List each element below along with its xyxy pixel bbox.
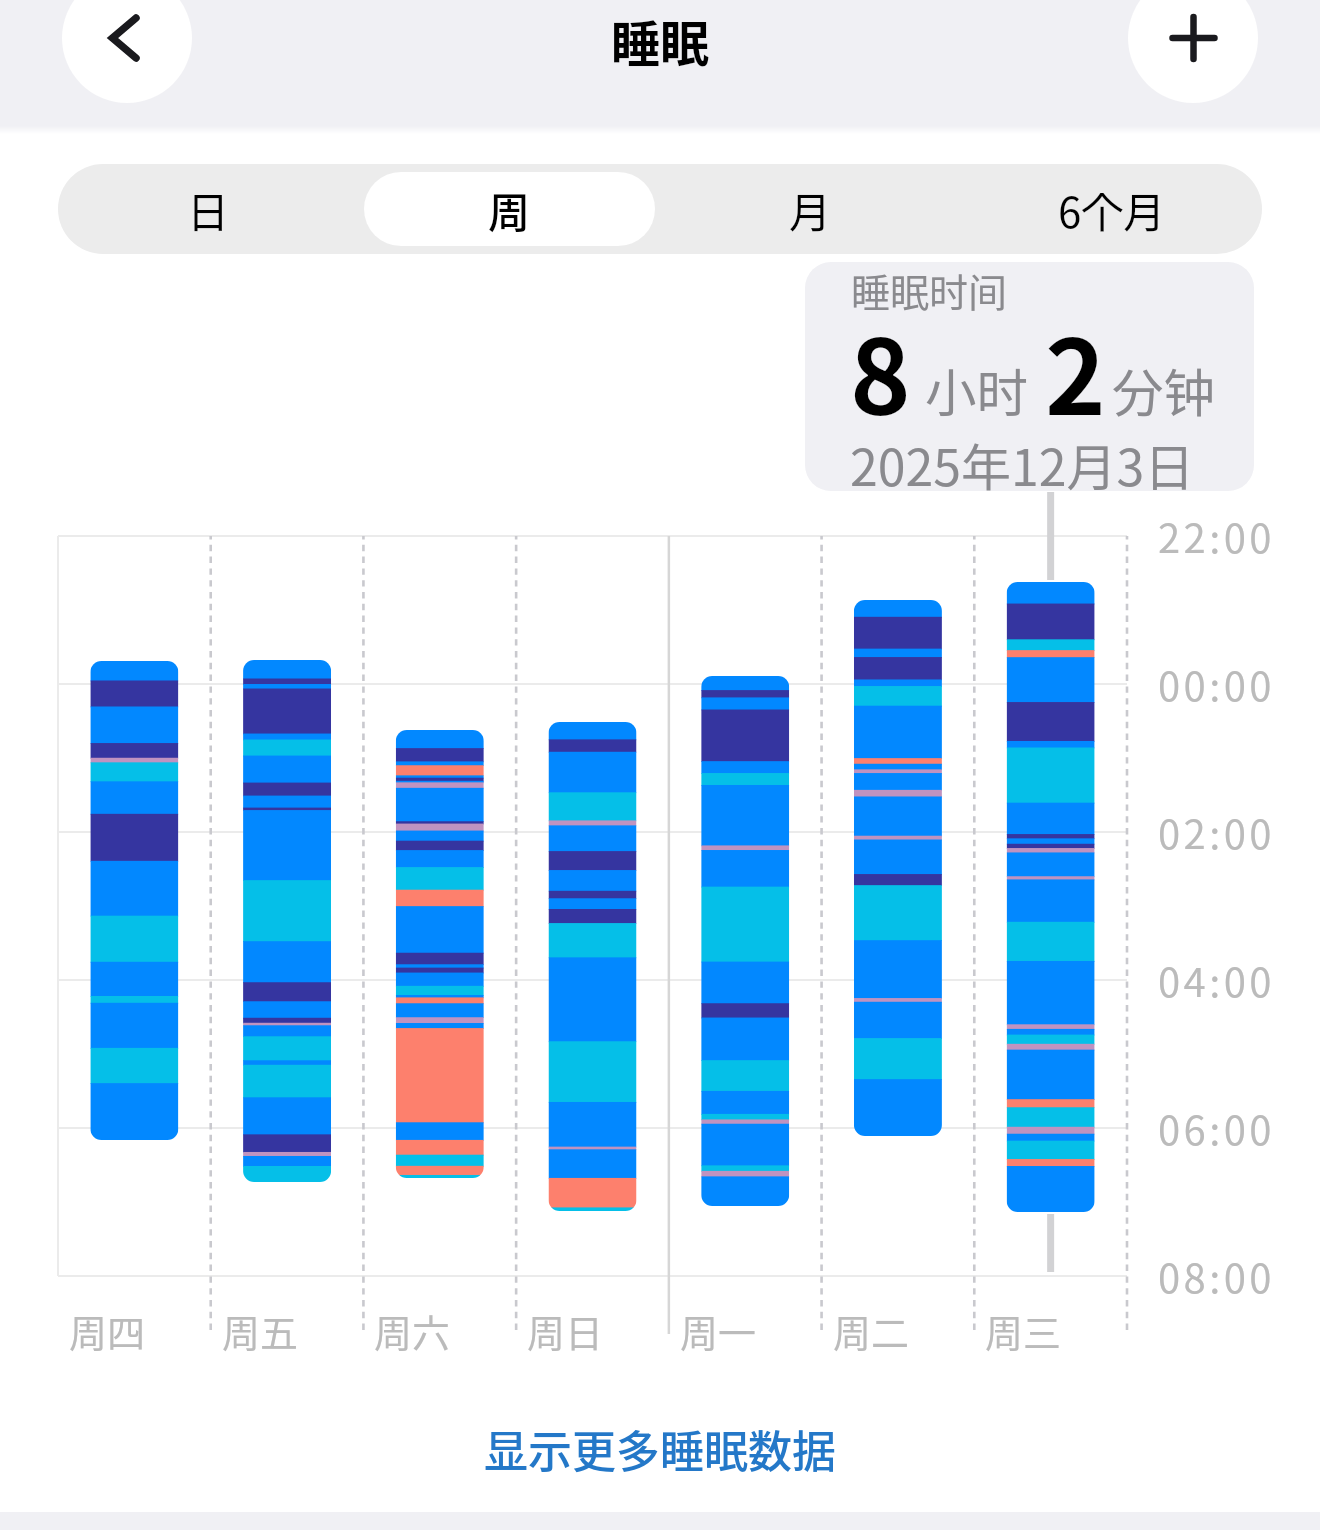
staticText: 2025年12月3日 — [850, 428, 1195, 491]
staticText: 显示更多睡眠数据 — [484, 1417, 836, 1481]
staticText: 2 — [1045, 296, 1106, 445]
button[interactable]: 6个月 — [961, 164, 1262, 254]
staticText: 08:00 — [1158, 1247, 1275, 1305]
staticText: 周三 — [985, 1303, 1062, 1358]
staticText: 周五 — [222, 1303, 299, 1358]
button[interactable]: 周五 — [211, 536, 364, 1360]
button[interactable]: 周三 — [974, 536, 1127, 1360]
button[interactable]: Add — [1128, 0, 1258, 103]
button[interactable]: 周日 — [516, 536, 669, 1360]
staticText: 00:00 — [1158, 655, 1275, 713]
staticText: 周日 — [527, 1303, 604, 1358]
button[interactable]: 周四 — [58, 536, 211, 1360]
button[interactable]: 月 — [660, 164, 961, 254]
staticText: 月 — [789, 179, 832, 240]
button[interactable]: 周二 — [822, 536, 975, 1360]
staticText: 6个月 — [1058, 179, 1166, 240]
staticText: 周六 — [374, 1303, 451, 1358]
staticText: 04:00 — [1158, 951, 1275, 1009]
button[interactable]: 周六 — [363, 536, 516, 1360]
button[interactable]: 日 — [58, 164, 359, 254]
staticText: 睡眠 — [611, 5, 710, 76]
staticText: 02:00 — [1158, 803, 1275, 861]
staticText: 22:00 — [1158, 507, 1275, 565]
staticText: 8 — [850, 296, 911, 445]
staticText: 周二 — [833, 1303, 910, 1358]
button[interactable]: 周一 — [669, 536, 822, 1360]
staticText: 周一 — [680, 1303, 757, 1358]
staticText: 06:00 — [1158, 1099, 1275, 1157]
staticText: 日 — [187, 179, 230, 240]
button[interactable]: 显示更多睡眠数据 — [0, 1404, 1320, 1494]
button[interactable]: Back — [62, 0, 192, 103]
staticText: 周四 — [69, 1303, 146, 1358]
staticText: 周 — [488, 179, 531, 240]
staticText: 小时 — [925, 352, 1029, 427]
button[interactable]: 周 — [359, 164, 660, 254]
staticText: 分钟 — [1112, 352, 1216, 427]
staticText: 睡眠时间 — [851, 262, 1008, 318]
